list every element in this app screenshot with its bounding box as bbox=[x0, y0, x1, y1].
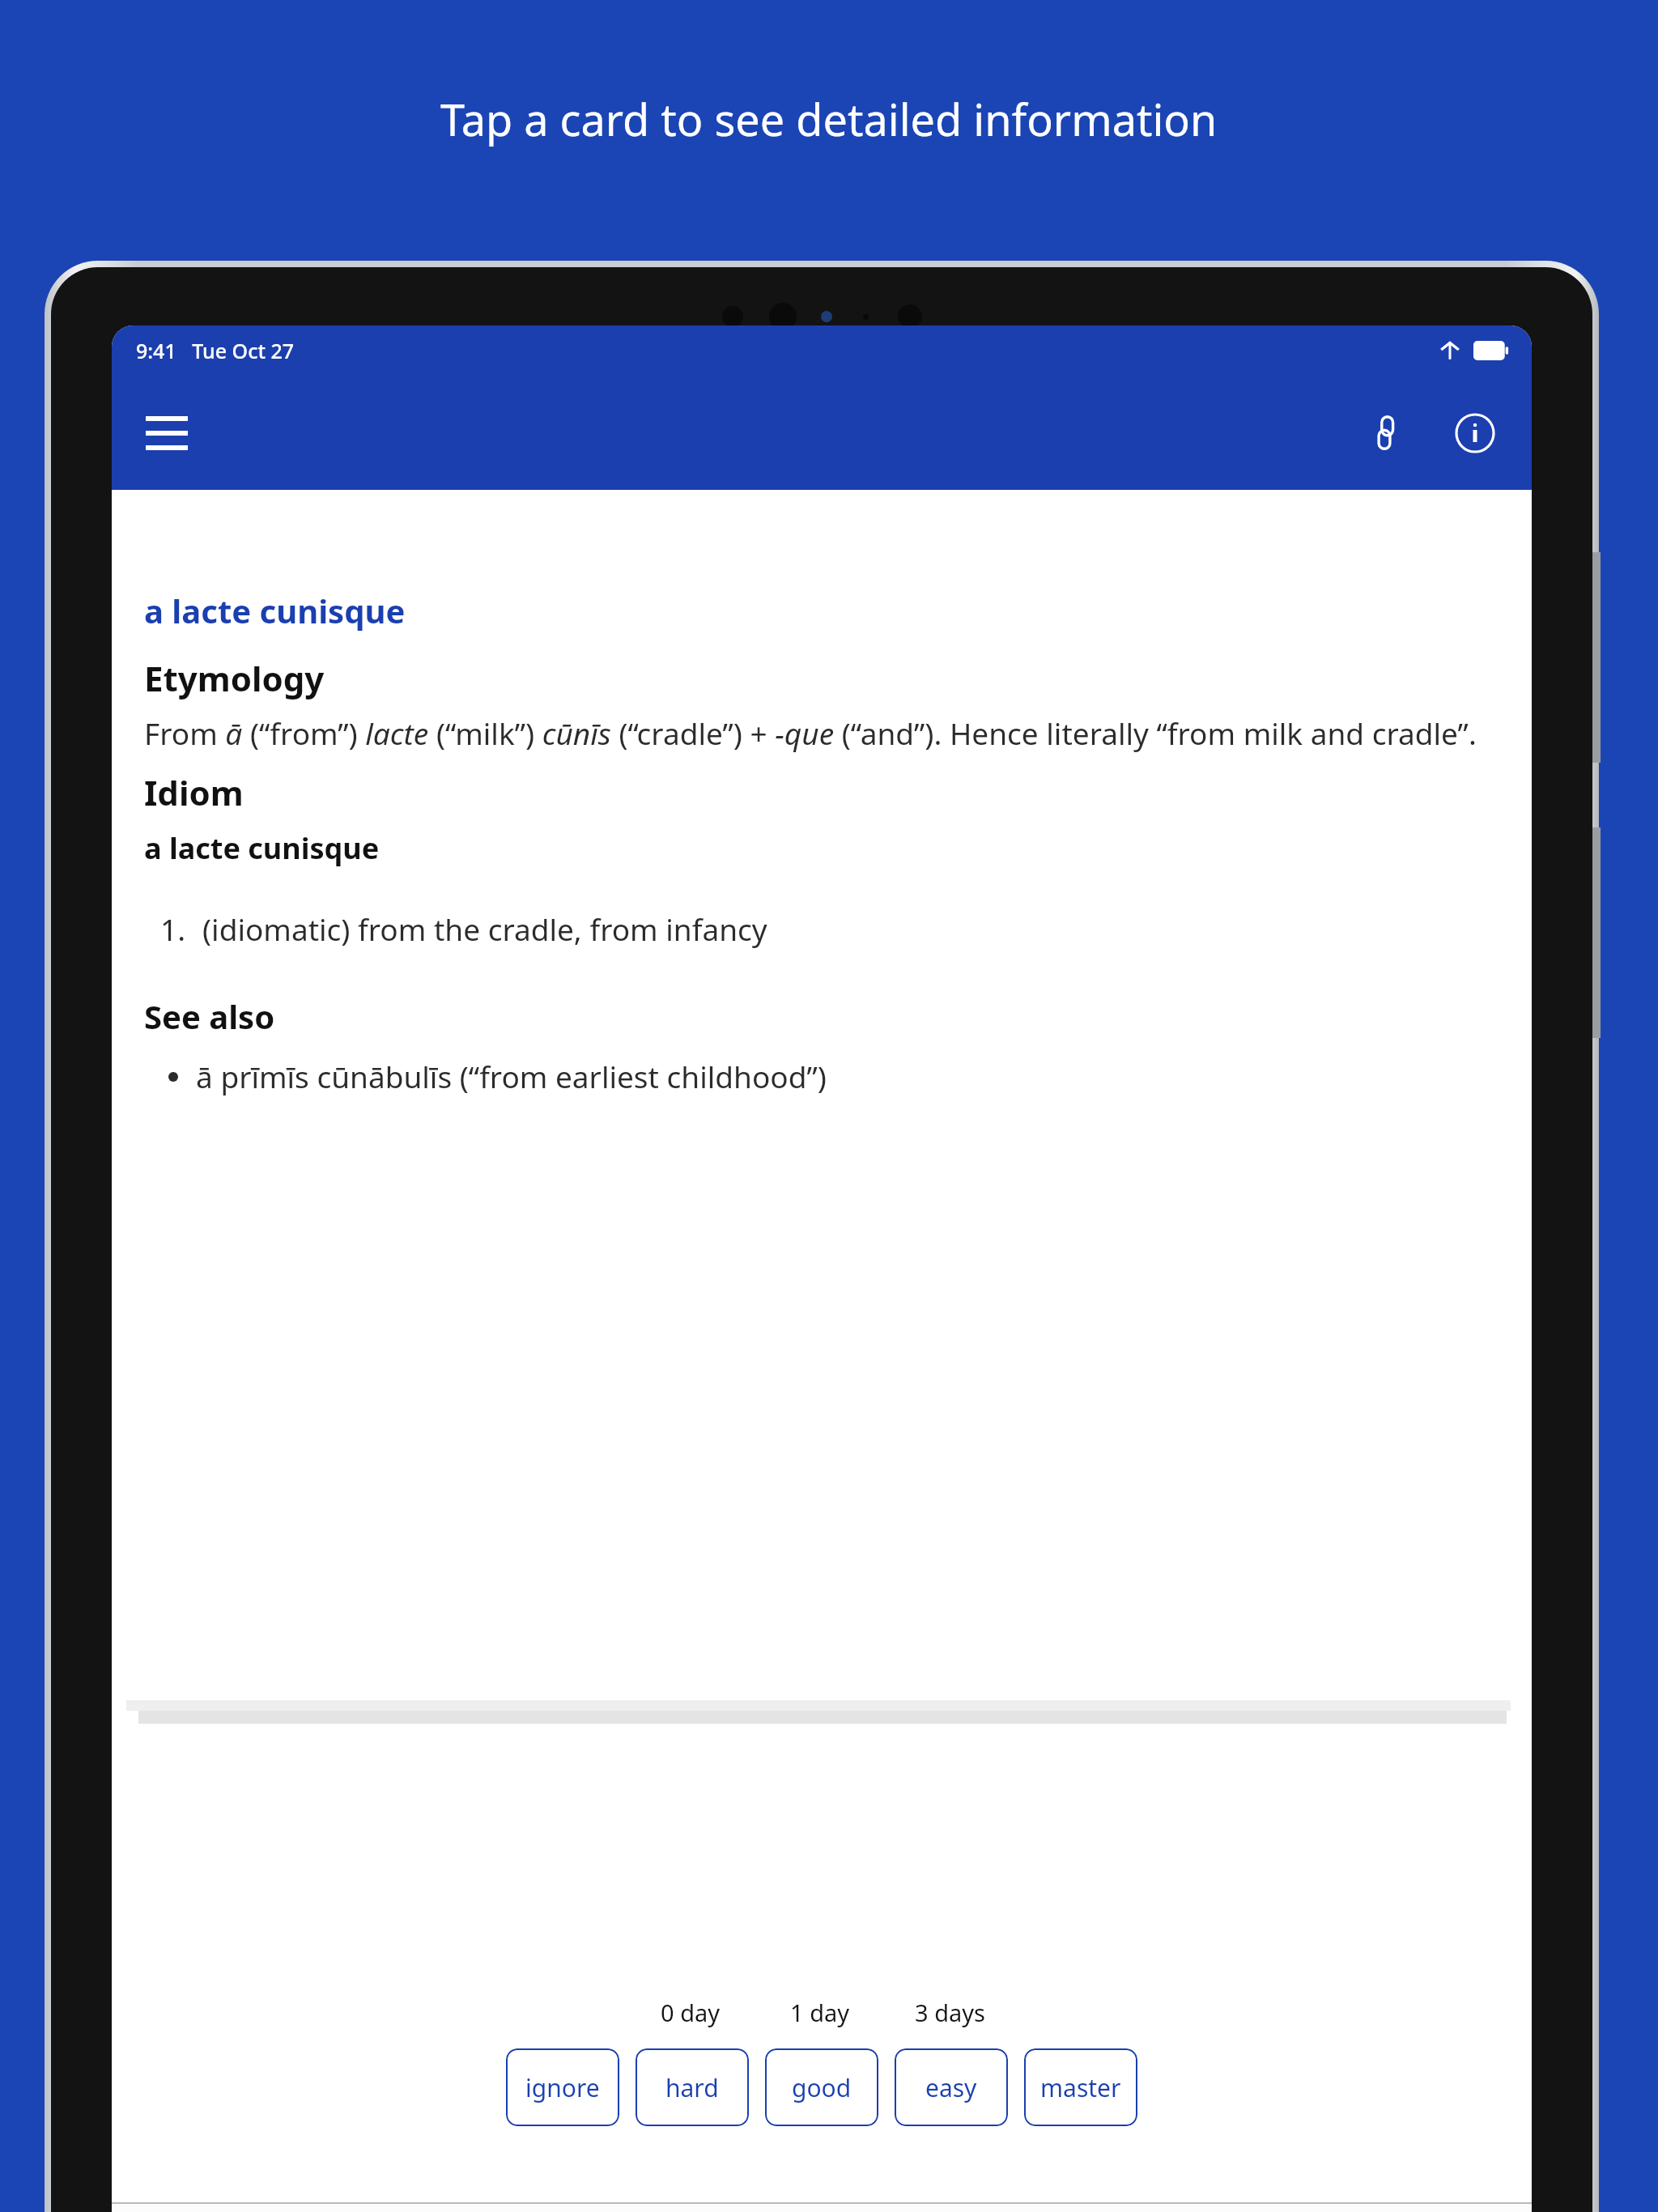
staticText: (idiomatic) from the cradle, from infanc… bbox=[202, 908, 767, 949]
staticText: 3 days bbox=[915, 1997, 985, 2028]
staticText: 9:41 Tue Oct 27 bbox=[136, 337, 295, 364]
staticText: 1 day bbox=[790, 1997, 850, 2028]
button[interactable]: Information bbox=[1436, 394, 1514, 472]
staticText: Etymology bbox=[144, 655, 325, 701]
staticText: See also bbox=[144, 994, 275, 1038]
staticText: From ā (“from”) lacte (“milk”) cūnīs (“c… bbox=[144, 713, 1477, 753]
button[interactable]: easy bbox=[895, 2048, 1008, 2126]
staticText: 1. bbox=[160, 908, 186, 949]
button[interactable]: master bbox=[1024, 2048, 1137, 2126]
button[interactable]: ignore bbox=[506, 2048, 619, 2126]
staticText: ā prīmīs cūnābulīs (“from earliest child… bbox=[196, 1056, 827, 1096]
staticText: hard bbox=[665, 2071, 719, 2104]
button[interactable]: good bbox=[765, 2048, 878, 2126]
staticText: Tap a card to see detailed information bbox=[440, 89, 1218, 149]
staticText: a lacte cunisque bbox=[144, 589, 406, 632]
staticText: 0 day bbox=[661, 1997, 721, 2028]
staticText: Idiom bbox=[144, 769, 244, 815]
staticText: master bbox=[1040, 2071, 1121, 2104]
staticText: good bbox=[792, 2071, 852, 2104]
button[interactable]: a lacte cunisque bbox=[118, 555, 1520, 1700]
staticText: a lacte cunisque bbox=[144, 828, 380, 868]
button[interactable]: hard bbox=[636, 2048, 749, 2126]
button[interactable]: Menu bbox=[128, 394, 206, 472]
button[interactable]: Copy link bbox=[1350, 394, 1428, 472]
staticText: ignore bbox=[525, 2071, 600, 2104]
staticText: easy bbox=[925, 2071, 977, 2104]
